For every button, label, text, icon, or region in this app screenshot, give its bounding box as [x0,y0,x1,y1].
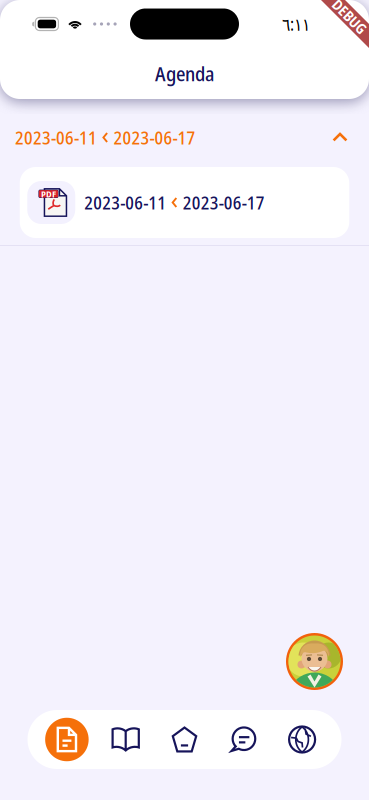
button[interactable]: Messages [214,710,273,769]
button[interactable]: Documents [37,710,96,769]
button[interactable]: 2023-06-11 [0,99,369,167]
button[interactable]: Explore [273,710,331,769]
staticText: 2023-06-11 [15,125,97,150]
staticText: PDF [41,187,56,200]
staticText: Agenda [155,60,214,87]
staticText: 2023-06-17 [114,125,196,150]
staticText: DEBUG [328,6,369,26]
button[interactable]: Profile [286,633,343,690]
button[interactable]: Library [96,710,155,769]
button[interactable]: Home [155,710,214,769]
staticText: 2023-06-17 [183,190,265,215]
button[interactable]: PDF [20,167,349,238]
staticText: ٦:١١ [282,12,310,36]
staticText: 2023-06-11 [84,190,166,215]
